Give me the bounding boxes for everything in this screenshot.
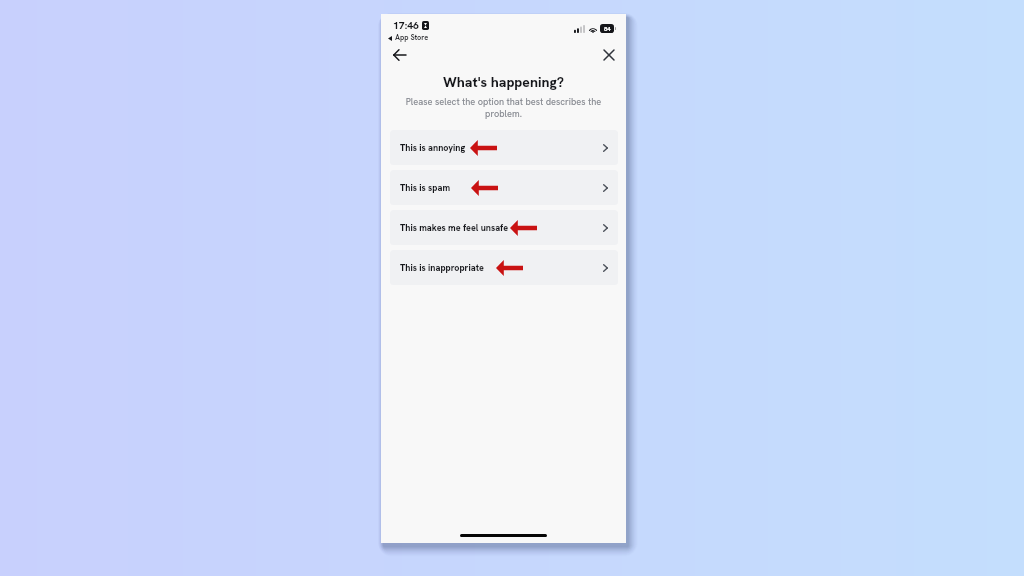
button[interactable]: This is spam [390, 170, 618, 205]
staticText: 84 [604, 25, 611, 33]
staticText: This is spam [400, 182, 451, 194]
button[interactable]: Back [387, 43, 411, 67]
staticText: Please select the option that best descr… [397, 96, 610, 120]
staticText: This is annoying [400, 142, 466, 154]
staticText: This makes me feel unsafe [400, 222, 509, 234]
staticText: What's happening? [443, 73, 564, 91]
button[interactable]: This makes me feel unsafe [390, 210, 618, 245]
staticText: This is inappropriate [400, 262, 484, 274]
button[interactable]: This is inappropriate [390, 250, 618, 285]
button[interactable]: This is annoying [390, 130, 618, 165]
staticText: 17:46 [393, 19, 419, 33]
button[interactable]: Close [597, 43, 621, 67]
staticText: App Store [395, 33, 429, 43]
